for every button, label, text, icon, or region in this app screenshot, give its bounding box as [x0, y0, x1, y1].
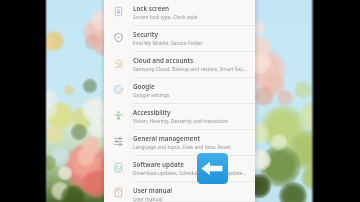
staticText: Google	[133, 82, 155, 91]
staticText: Cloud and accounts	[133, 56, 194, 65]
staticText: Security	[133, 30, 158, 39]
staticText: Samsung Cloud, Backup and restore, Smart…	[133, 66, 247, 73]
staticText: User manual	[133, 186, 173, 195]
staticText: General management	[133, 134, 201, 143]
staticText: User manual	[133, 196, 163, 202]
button[interactable]: Software update	[104, 156, 255, 182]
staticText: Find My Mobile, Secure Folder	[133, 40, 203, 47]
staticText: Accessibility	[133, 108, 171, 117]
staticText: Screen lock type, Clock style	[133, 14, 198, 21]
staticText: Google settings	[133, 92, 170, 99]
button[interactable]: General management	[104, 130, 255, 156]
button[interactable]: Accessibility	[104, 104, 255, 130]
button[interactable]: User manual	[104, 182, 255, 202]
staticText: Vision, Hearing, Dexterity and interacti…	[133, 118, 229, 125]
staticText: Download updates, Scheduled software upd…	[133, 170, 247, 177]
button[interactable]: Google	[104, 78, 255, 104]
staticText: Software update	[133, 160, 184, 169]
button[interactable]: Cloud and accounts	[104, 52, 255, 78]
button[interactable]: Security	[104, 26, 255, 52]
button[interactable]: Back	[197, 153, 228, 184]
staticText: Language and input, Date and time, Reset	[133, 144, 231, 151]
staticText: Lock screen	[133, 4, 170, 13]
button[interactable]: Lock screen	[104, 0, 255, 26]
